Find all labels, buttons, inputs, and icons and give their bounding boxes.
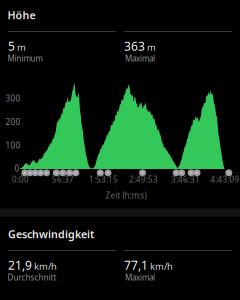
staticText: 21,9 xyxy=(8,257,32,273)
staticText: m xyxy=(147,41,156,53)
staticText: Minimum xyxy=(7,53,42,64)
staticText: m xyxy=(17,41,26,53)
staticText: 0:00 xyxy=(12,174,29,185)
staticText: 4:43:09 xyxy=(210,174,239,185)
staticText: 3:46:31 xyxy=(171,174,200,185)
staticText: 2:49:53 xyxy=(129,174,158,185)
staticText: 5 xyxy=(8,38,15,54)
staticText: 100 xyxy=(5,140,20,151)
staticText: 300 xyxy=(5,93,20,104)
staticText: Maximal xyxy=(125,272,155,283)
staticText: km/h xyxy=(34,260,57,272)
staticText: Durchschnitt xyxy=(7,272,56,283)
staticText: Geschwindigkeit xyxy=(8,227,94,241)
staticText: Zeit (h:m:s) xyxy=(105,190,146,201)
staticText: 0 xyxy=(14,163,19,174)
staticText: Maximal xyxy=(125,53,155,64)
staticText: 77,1 xyxy=(124,257,148,273)
staticText: km/h xyxy=(150,260,173,272)
staticText: Höhe xyxy=(7,8,35,22)
staticText: 363 xyxy=(124,38,145,54)
staticText: 1:53:15 xyxy=(89,174,118,185)
staticText: 56:37 xyxy=(52,174,74,185)
staticText: 200 xyxy=(5,117,20,127)
